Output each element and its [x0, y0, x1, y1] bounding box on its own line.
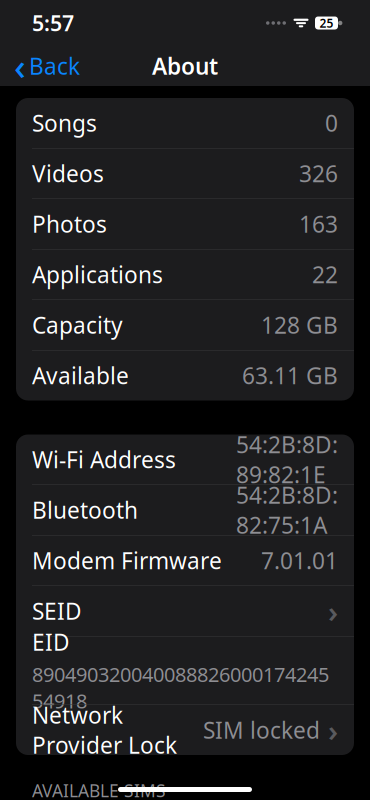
button[interactable]: Videos — [16, 148, 354, 198]
staticText: 54:2B:8D:82:75:1A — [236, 480, 338, 540]
button[interactable]: Available — [16, 350, 354, 400]
staticText: Capacity — [32, 310, 123, 340]
staticText: Modem Firmware — [32, 545, 222, 575]
staticText: SEID — [32, 596, 82, 626]
staticText: About — [152, 51, 218, 81]
button[interactable]: Capacity — [16, 300, 354, 350]
staticText: Back — [29, 51, 80, 81]
staticText: › — [328, 710, 338, 749]
staticText: ◞ — [300, 22, 301, 24]
staticText: Network Provider Lock — [32, 700, 177, 760]
staticText: Applications — [32, 259, 163, 289]
staticText: 54:2B:8D:89:82:1E — [236, 429, 338, 490]
button[interactable]: Modem Firmware — [16, 535, 354, 585]
button[interactable]: Bluetooth — [16, 485, 354, 535]
staticText: 22 — [312, 259, 338, 289]
staticText: EID — [32, 627, 70, 657]
staticText: 5:57 — [32, 9, 74, 37]
staticText: Songs — [32, 108, 97, 138]
button[interactable]: Wi-Fi Address — [16, 434, 354, 484]
button[interactable]: Songs — [16, 98, 354, 148]
staticText: 163 — [299, 209, 338, 239]
staticText: Videos — [32, 158, 104, 188]
button[interactable]: SEID — [16, 586, 354, 636]
staticText: 63.11 GB — [242, 360, 338, 390]
staticText: Bluetooth — [32, 495, 138, 525]
staticText: › — [328, 591, 338, 630]
staticText: ‹ — [14, 42, 26, 90]
button[interactable]: EID — [16, 636, 354, 704]
button[interactable]: ‹ — [4, 46, 90, 86]
staticText: 25 — [319, 15, 333, 31]
staticText: SIM locked — [203, 715, 320, 745]
button[interactable]: Applications — [16, 249, 354, 299]
staticText: 326 — [299, 158, 338, 188]
staticText: 89049032004008882600017424554918 — [32, 661, 329, 714]
staticText: 128 GB — [261, 310, 338, 340]
staticText: AVAILABLE SIMS — [32, 779, 166, 800]
button[interactable]: Photos — [16, 199, 354, 249]
staticText: Photos — [32, 209, 107, 239]
staticText: Wi-Fi Address — [32, 444, 176, 474]
button[interactable]: Network Provider Lock — [16, 705, 354, 755]
staticText: Available — [32, 360, 129, 390]
staticText: 0 — [325, 108, 338, 138]
staticText: 7.01.01 — [261, 545, 338, 575]
